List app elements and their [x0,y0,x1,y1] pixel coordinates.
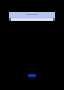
button[interactable]: Continue [28,74,36,77]
